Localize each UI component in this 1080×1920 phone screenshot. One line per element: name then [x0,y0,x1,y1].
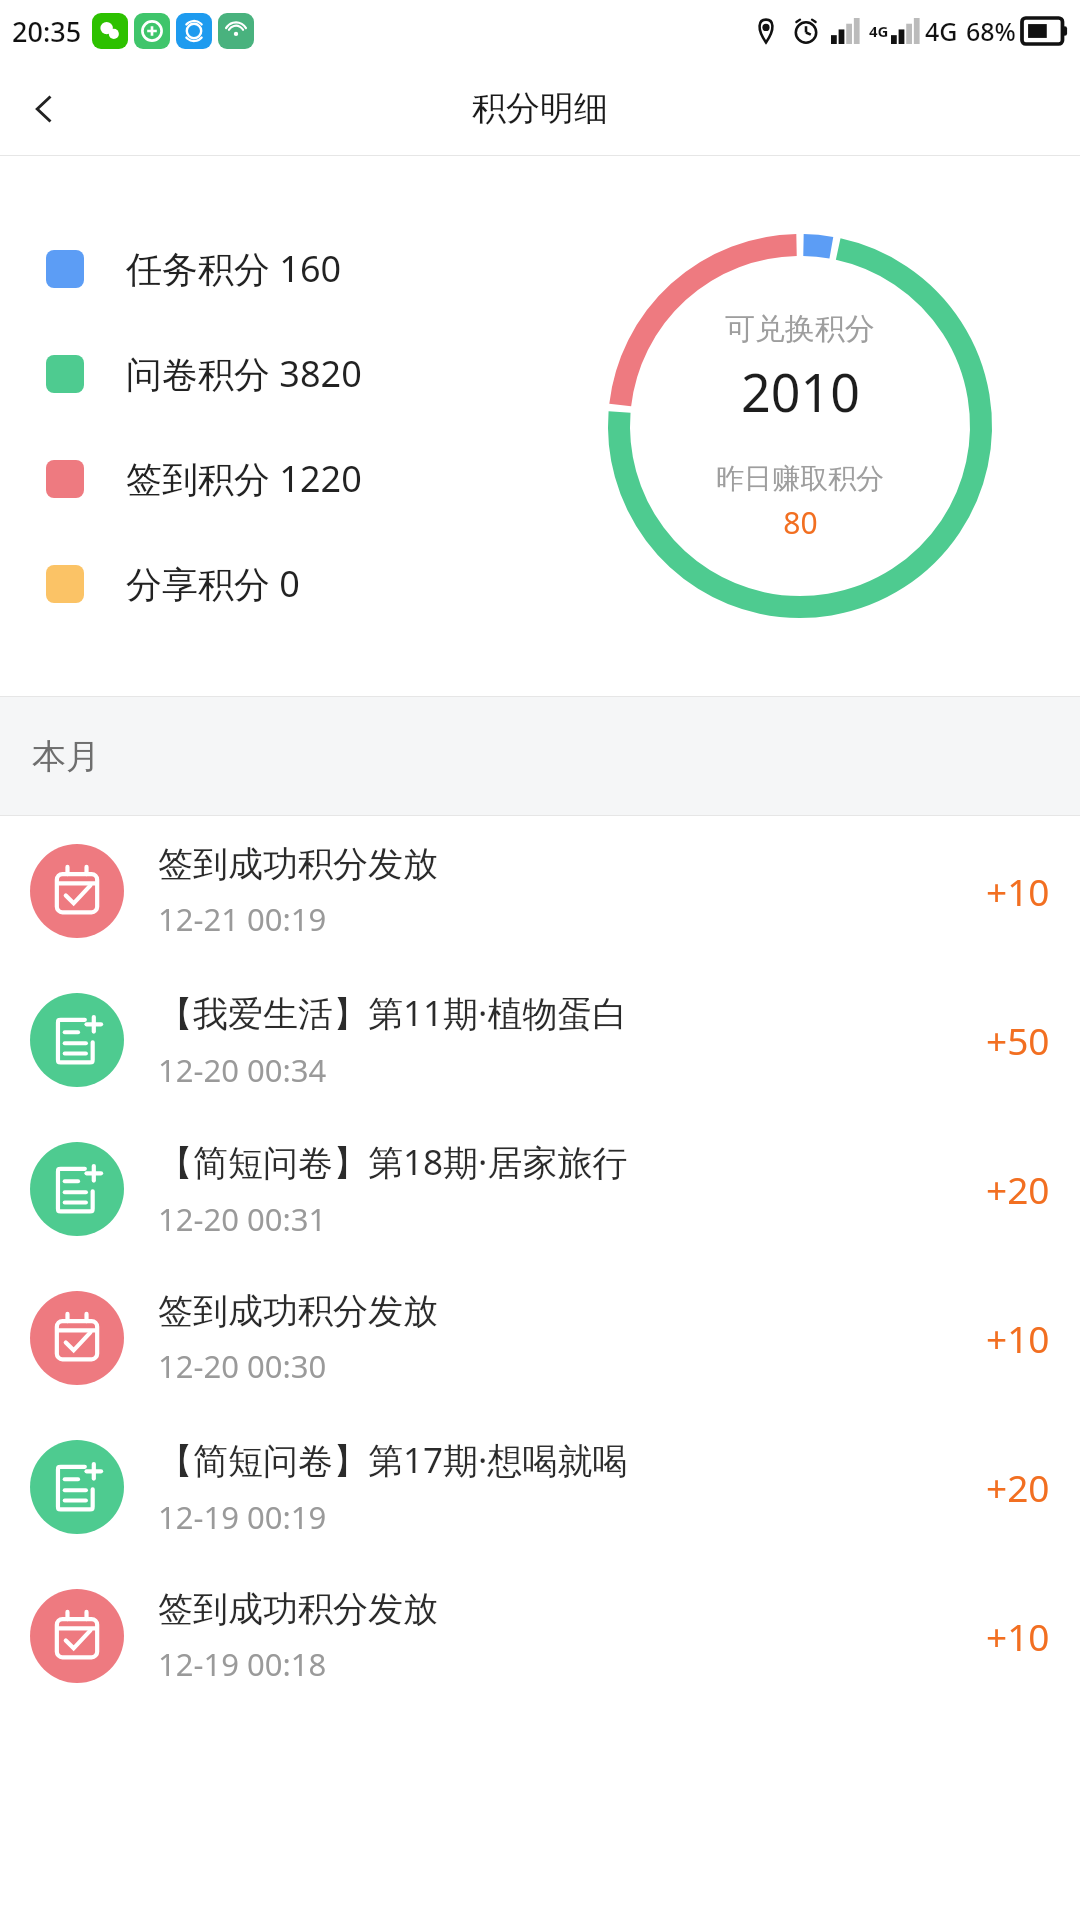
staticText: 问卷积分 3820 [126,349,362,398]
staticText: 任务积分 160 [126,244,342,293]
staticText: 本月 [32,735,100,778]
button[interactable]: 【我爱生活】第11期·植物蛋白 [0,965,1080,1114]
staticText: 【我爱生活】第11期·植物蛋白 [158,989,628,1037]
staticText: 12-20 00:30 [158,1345,327,1387]
button[interactable]: 分享积分 0 [46,559,466,608]
staticText: 昨日赚取积分 [716,461,884,496]
staticText: 20:35 [12,13,82,50]
button[interactable]: 任务积分 160 [46,244,466,293]
button[interactable]: 【简短问卷】第17期·想喝就喝 [0,1412,1080,1561]
staticText: 68% [966,14,1016,48]
staticText: 80 [783,502,818,543]
staticText: 12-20 00:31 [158,1198,327,1240]
staticText: 12-20 00:34 [158,1049,327,1091]
staticText: 签到成功积分发放 [158,842,438,886]
button[interactable]: 签到成功积分发放 [0,1263,1080,1412]
staticText: +10 [986,1611,1050,1661]
button[interactable]: 问卷积分 3820 [46,349,466,398]
staticText: 12-21 00:19 [158,898,327,940]
staticText: 积分明细 [472,87,608,130]
staticText: 签到成功积分发放 [158,1289,438,1333]
staticText: 12-19 00:19 [158,1496,327,1538]
button[interactable]: 签到成功积分发放 [0,1561,1080,1710]
staticText: 签到成功积分发放 [158,1587,438,1631]
staticText: 4G [869,21,889,41]
staticText: 可兑换积分 [725,310,875,348]
staticText: 签到积分 1220 [126,454,362,503]
staticText: 分享积分 0 [126,559,300,608]
staticText: +20 [986,1164,1050,1214]
staticText: 12-19 00:18 [158,1643,327,1685]
staticText: 【简短问卷】第17期·想喝就喝 [158,1436,628,1484]
staticText: 【简短问卷】第18期·居家旅行 [158,1138,628,1186]
button[interactable]: Back [8,73,80,145]
staticText: 2010 [741,356,860,427]
staticText: +20 [986,1462,1050,1512]
other: Location [751,16,781,46]
staticText: 4G [925,14,958,48]
staticText: +50 [986,1015,1050,1065]
button[interactable]: 签到成功积分发放 [0,816,1080,965]
button[interactable]: 【简短问卷】第18期·居家旅行 [0,1114,1080,1263]
staticText: +10 [986,1313,1050,1363]
staticText: +10 [986,866,1050,916]
button[interactable]: 签到积分 1220 [46,454,466,503]
